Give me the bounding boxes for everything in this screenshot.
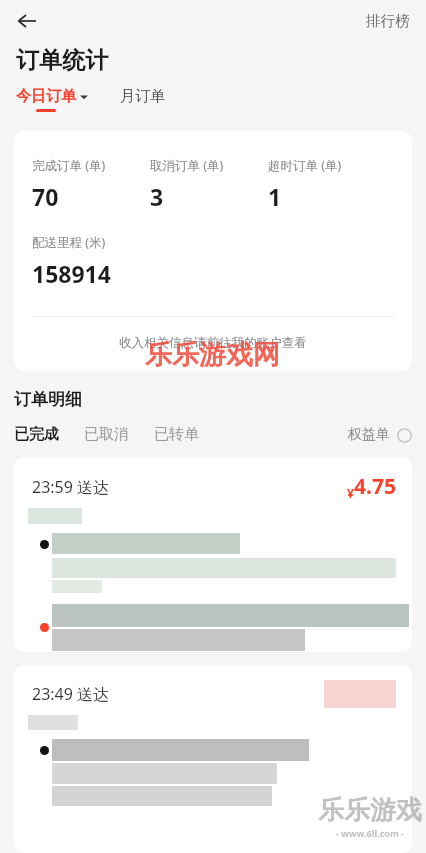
button[interactable]: 23:49 送达 — [14, 665, 412, 853]
staticText: 取消订单 (单) — [150, 157, 224, 174]
button[interactable]: 已完成 — [14, 425, 59, 444]
staticText: 158914 — [32, 258, 111, 289]
staticText: 订单统计 — [16, 46, 108, 75]
staticText: 4.75 — [354, 472, 396, 501]
button[interactable]: 完成订单 (单) — [14, 131, 412, 371]
staticText: 订单明细 — [14, 389, 82, 410]
staticText: 排行榜 — [366, 12, 410, 30]
staticText: 超时订单 (单) — [268, 157, 342, 174]
staticText: - www.6ll.com - — [336, 827, 404, 839]
staticText: 3 — [150, 181, 164, 212]
staticText: 已完成 — [14, 425, 59, 444]
button[interactable]: 已取消 — [84, 425, 129, 444]
staticText: 权益单 — [348, 426, 390, 444]
staticText: 完成订单 (单) — [32, 157, 106, 174]
staticText: 乐乐游戏 — [318, 794, 422, 827]
staticText: 乐乐游戏网 — [145, 338, 280, 372]
button[interactable]: 今日订单 — [16, 87, 92, 112]
staticText: 23:49 送达 — [32, 683, 110, 705]
staticText: 收入相关信息请前往我的账户查看 — [119, 335, 307, 351]
button[interactable]: 23:59 送达 — [14, 457, 412, 652]
staticText: ¥ — [347, 485, 354, 501]
staticText: 配送里程 (米) — [32, 234, 106, 251]
staticText: 70 — [32, 181, 59, 212]
staticText: 1 — [268, 181, 282, 212]
staticText: 23:59 送达 — [32, 476, 110, 498]
button[interactable]: 排行榜 — [350, 4, 426, 38]
staticText: 已转单 — [154, 425, 199, 444]
staticText: 已取消 — [84, 425, 129, 444]
staticText: 月订单 — [120, 87, 165, 106]
staticText: 今日订单 — [16, 87, 76, 106]
button[interactable]: Back — [10, 4, 44, 38]
button[interactable]: 权益单 — [348, 426, 412, 444]
button[interactable]: 月订单 — [120, 87, 165, 106]
button[interactable]: 已转单 — [154, 425, 199, 444]
